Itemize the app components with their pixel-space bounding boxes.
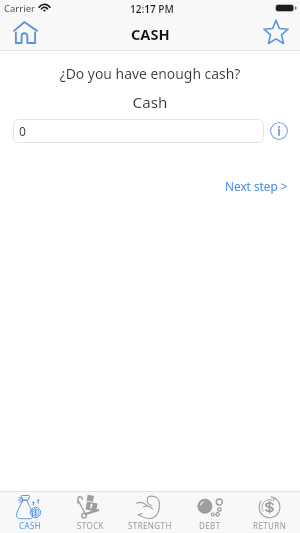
staticText: Carrier bbox=[4, 2, 35, 15]
button[interactable]: Information bbox=[270, 122, 288, 140]
button[interactable]: Favorite bbox=[250, 20, 300, 51]
staticText: STRENGTH bbox=[128, 520, 172, 531]
button[interactable]: STOCK bbox=[60, 491, 120, 533]
button[interactable]: Home bbox=[0, 20, 50, 51]
button[interactable]: Next step > bbox=[222, 175, 291, 197]
button[interactable]: DEBT bbox=[180, 491, 240, 533]
button[interactable]: CASH bbox=[0, 491, 60, 533]
staticText: RETURN bbox=[253, 520, 287, 531]
staticText: 12:17 PM bbox=[130, 2, 174, 16]
staticText: DEBT bbox=[199, 520, 221, 531]
button[interactable]: RETURN bbox=[240, 491, 300, 533]
staticText: Next step > bbox=[225, 178, 288, 194]
staticText: CASH bbox=[131, 24, 170, 44]
staticText: 0 bbox=[19, 123, 26, 139]
staticText: ¿Do you have enough cash? bbox=[0, 64, 300, 83]
button[interactable]: STRENGTH bbox=[120, 491, 180, 533]
staticText: STOCK bbox=[77, 520, 104, 531]
staticText: Cash bbox=[0, 92, 300, 113]
button[interactable]: 0 bbox=[13, 119, 264, 143]
staticText: CASH bbox=[19, 520, 42, 531]
